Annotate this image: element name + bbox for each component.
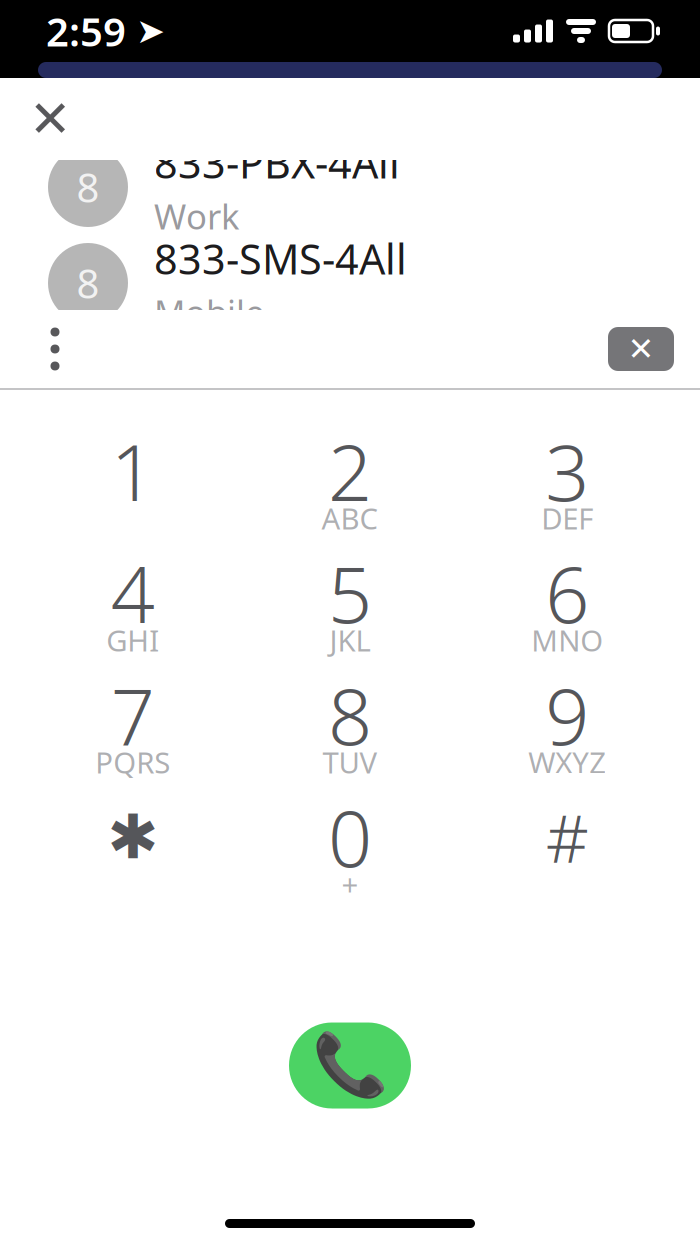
button[interactable]: More options: [30, 319, 80, 379]
staticText: DEF: [541, 498, 593, 537]
button[interactable]: Call: [289, 1022, 411, 1108]
staticText: 4: [111, 542, 155, 644]
button[interactable]: 3: [459, 424, 676, 546]
button[interactable]: 2: [241, 424, 459, 546]
button[interactable]: 4: [24, 546, 241, 668]
button[interactable]: 7: [24, 668, 241, 790]
staticText: 8: [328, 664, 372, 766]
button[interactable]: 0: [241, 790, 459, 912]
button[interactable]: 6: [459, 546, 676, 668]
button[interactable]: 8: [0, 139, 700, 235]
button[interactable]: 8: [0, 235, 700, 331]
button[interactable]: #: [459, 790, 676, 912]
staticText: MNO: [531, 620, 603, 659]
button[interactable]: Close: [22, 91, 78, 147]
staticText: ✕: [627, 331, 654, 367]
button[interactable]: 8: [241, 668, 459, 790]
staticText: 3: [545, 420, 589, 522]
button[interactable]: 1: [24, 424, 241, 546]
staticText: 833-PBX-4All: [154, 135, 400, 190]
button[interactable]: Backspace: [608, 327, 674, 371]
staticText: ✱: [107, 802, 158, 872]
staticText: 2: [328, 420, 372, 522]
staticText: 8: [76, 256, 99, 309]
staticText: 0: [328, 786, 372, 888]
button[interactable]: ✱: [24, 790, 241, 912]
staticText: 5: [328, 542, 372, 644]
staticText: ✕: [29, 90, 71, 148]
staticText: #: [546, 793, 589, 881]
staticText: ➤: [136, 11, 165, 51]
staticText: 1: [111, 420, 155, 522]
staticText: 6: [545, 542, 589, 644]
staticText: TUV: [322, 742, 377, 781]
staticText: 9: [545, 664, 589, 766]
staticText: JKL: [329, 620, 370, 659]
staticText: GHI: [106, 620, 159, 659]
staticText: 8: [76, 160, 99, 213]
staticText: WXYZ: [528, 742, 606, 781]
staticText: +: [341, 864, 358, 903]
button[interactable]: 9: [459, 668, 676, 790]
staticText: 7: [111, 664, 155, 766]
staticText: ABC: [321, 498, 378, 537]
staticText: 833-SMS-4All: [154, 231, 407, 286]
staticText: 📞: [312, 1030, 388, 1101]
staticText: 2:59: [46, 4, 126, 57]
staticText: Mobile: [154, 289, 265, 335]
staticText: Work: [154, 193, 240, 239]
staticText: PQRS: [95, 742, 170, 781]
button[interactable]: 5: [241, 546, 459, 668]
